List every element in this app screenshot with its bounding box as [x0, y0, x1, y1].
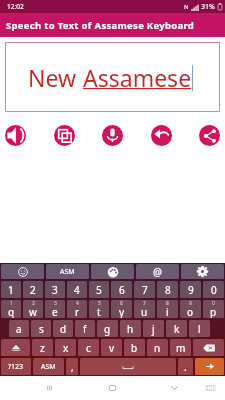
button[interactable]: k — [166, 320, 187, 337]
button[interactable]: 6 — [111, 281, 132, 298]
staticText: 5 — [98, 300, 101, 307]
staticText: 6 — [119, 283, 125, 297]
button[interactable]: d — [53, 320, 73, 337]
button[interactable]: h — [120, 320, 141, 337]
staticText: v — [109, 341, 115, 355]
staticText: d — [60, 322, 67, 336]
button[interactable]: 9 — [180, 300, 201, 318]
button[interactable]: Speech to Text of Assamese Keyboard — [0, 13, 225, 37]
button[interactable]: 0 — [203, 281, 224, 298]
button[interactable]: 3 — [45, 300, 65, 318]
staticText: 8 — [166, 300, 169, 307]
staticText: N — [184, 3, 189, 11]
button[interactable]: emoji — [1, 264, 44, 279]
button[interactable]: del — [193, 339, 224, 356]
button[interactable]: 2 — [23, 281, 43, 298]
staticText: . — [184, 360, 187, 374]
button[interactable]: space — [80, 358, 176, 375]
staticText: c — [86, 341, 91, 355]
button[interactable]: palette — [91, 264, 134, 279]
staticText: @ — [153, 265, 162, 279]
button[interactable]: z — [32, 339, 53, 356]
button[interactable]: Switch keyboard — [196, 376, 224, 400]
button[interactable]: g — [97, 320, 118, 337]
button[interactable]: 6 — [111, 300, 132, 318]
button[interactable]: enter — [195, 358, 224, 375]
staticText: m — [176, 341, 186, 355]
button[interactable]: 9 — [180, 281, 201, 298]
button[interactable]: @ — [136, 264, 179, 279]
staticText: 0 — [211, 283, 217, 297]
button[interactable]: 5 — [89, 300, 109, 318]
button[interactable]: a — [9, 320, 29, 337]
button[interactable]: Home — [98, 376, 126, 400]
staticText: 9 — [189, 300, 192, 307]
button[interactable]: Recents — [35, 376, 63, 400]
staticText: n — [154, 341, 161, 355]
staticText: e — [52, 305, 58, 318]
button[interactable]: Copy — [54, 125, 75, 146]
staticText: ASM — [60, 267, 75, 277]
button[interactable]: New — [5, 42, 220, 112]
staticText: h — [127, 322, 134, 336]
staticText: 4 — [76, 300, 79, 307]
staticText: 0 — [212, 300, 215, 307]
button[interactable]: Microphone — [102, 125, 123, 146]
staticText: j — [152, 322, 155, 336]
button[interactable]: Hide keyboard — [160, 376, 188, 400]
button[interactable]: ASM — [33, 358, 64, 375]
button[interactable]: 3 — [45, 281, 65, 298]
button[interactable]: 8 — [157, 300, 178, 318]
button[interactable]: ?123 — [1, 358, 31, 375]
staticText: 3 — [52, 283, 58, 297]
button[interactable]: n — [147, 339, 168, 356]
staticText: p — [210, 305, 217, 318]
button[interactable]: c — [78, 339, 99, 356]
button[interactable]: l — [189, 320, 210, 337]
button[interactable]: 1 — [1, 300, 21, 318]
staticText: l — [198, 322, 201, 336]
button[interactable]: 4 — [67, 281, 87, 298]
staticText: 5 — [96, 283, 102, 297]
staticText: w — [29, 305, 37, 318]
button[interactable]: j — [143, 320, 164, 337]
staticText: t — [97, 305, 101, 318]
staticText: 12:02 — [7, 2, 24, 11]
staticText: 9 — [188, 283, 194, 297]
button[interactable]: , — [66, 358, 78, 375]
staticText: f — [83, 322, 87, 336]
button[interactable]: 4 — [67, 300, 87, 318]
button[interactable]: Undo — [151, 125, 172, 146]
button[interactable]: x — [55, 339, 76, 356]
button[interactable]: b — [124, 339, 145, 356]
button[interactable]: m — [170, 339, 191, 356]
staticText: 3 — [54, 300, 57, 307]
staticText: 4 — [74, 283, 80, 297]
button[interactable]: 0 — [203, 300, 224, 318]
staticText: 2 — [32, 300, 35, 307]
button[interactable]: 5 — [89, 281, 109, 298]
button[interactable]: 8 — [157, 281, 178, 298]
staticText: 8 — [165, 283, 171, 297]
staticText: 7 — [143, 300, 146, 307]
staticText: r — [75, 305, 80, 318]
button[interactable]: v — [101, 339, 122, 356]
staticText: 1 — [8, 283, 14, 297]
button[interactable]: Share — [199, 125, 220, 146]
button[interactable]: 2 — [23, 300, 43, 318]
button[interactable]: 7 — [134, 281, 155, 298]
button[interactable]: ASM — [46, 264, 89, 279]
staticText: k — [174, 322, 180, 336]
button[interactable]: 1 — [1, 281, 21, 298]
button[interactable]: Speak — [5, 125, 26, 146]
staticText: z — [40, 341, 45, 355]
staticText: 1 — [10, 300, 13, 307]
button[interactable]: . — [178, 358, 193, 375]
button[interactable]: gear — [181, 264, 224, 279]
button[interactable]: 7 — [134, 300, 155, 318]
button[interactable]: s — [31, 320, 51, 337]
button[interactable]: shift — [1, 339, 30, 356]
staticText: 7 — [142, 283, 148, 297]
staticText: b — [131, 341, 138, 355]
button[interactable]: f — [75, 320, 95, 337]
